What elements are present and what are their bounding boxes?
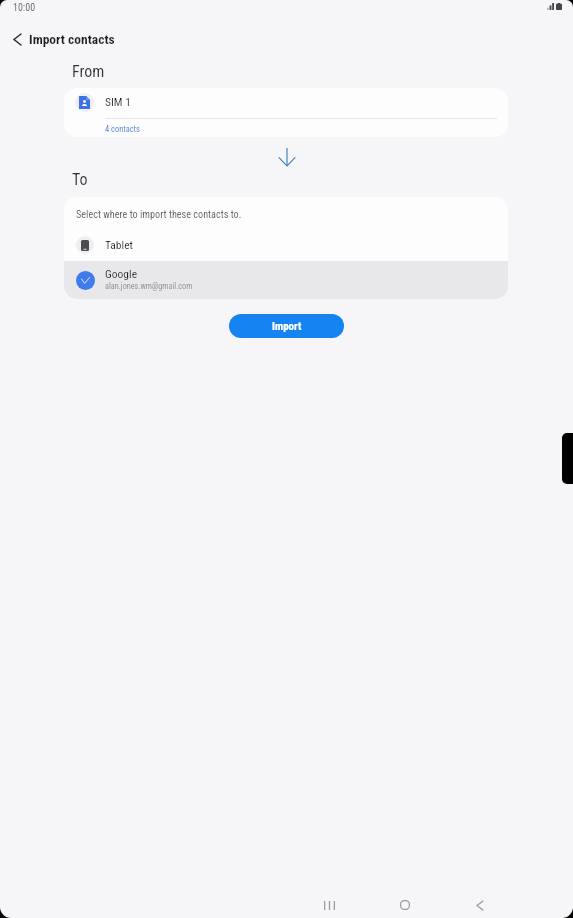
button[interactable]: SIM 1 — [64, 88, 508, 137]
button[interactable]: Recent apps — [314, 890, 344, 918]
button[interactable]: Google — [64, 261, 508, 299]
staticText: SIM 1 — [105, 95, 131, 108]
staticText: Select where to import these contacts to… — [76, 209, 242, 221]
staticText: Tablet — [105, 238, 133, 251]
button[interactable]: Tablet — [64, 227, 508, 261]
button[interactable]: Edge panel handle — [562, 433, 573, 484]
staticText: Google — [105, 267, 138, 280]
staticText: Import — [272, 320, 302, 333]
staticText: Import contacts — [29, 31, 115, 47]
staticText: To — [72, 170, 88, 189]
staticText: 4 contacts — [105, 124, 140, 134]
button[interactable]: Back — [465, 890, 495, 918]
staticText: alan.jones.wm@gmail.com — [105, 281, 193, 291]
button[interactable]: Import — [229, 314, 344, 338]
button[interactable]: Home — [390, 890, 420, 918]
staticText: From — [72, 62, 105, 81]
button[interactable]: Back — [4, 26, 30, 52]
staticText: 10:00 — [13, 2, 36, 14]
